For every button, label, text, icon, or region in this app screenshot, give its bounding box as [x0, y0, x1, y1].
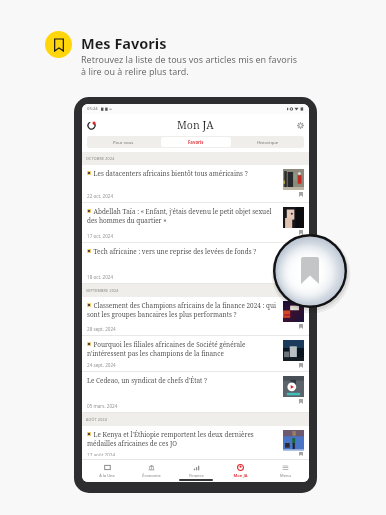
button[interactable]: Historique: [233, 137, 303, 147]
button[interactable]: Abdellah Taïa : « Enfant, j'étais devenu…: [82, 203, 309, 243]
staticText: 28 sept. 2024: [87, 326, 116, 332]
staticText: Tech africaine : vers une reprise des le…: [87, 247, 279, 256]
staticText: Retrouvez la liste de tous vos articles …: [81, 53, 298, 78]
button[interactable]: Bookmark: [298, 191, 304, 197]
button[interactable]: Bookmark: [298, 323, 304, 329]
staticText: 05:24: [87, 106, 98, 112]
button[interactable]: Le Kenya et l'Éthiopie remportent les de…: [82, 426, 309, 459]
button[interactable]: Bookmark: [298, 398, 304, 404]
staticText: Les datacenters africains bientôt tous a…: [87, 169, 279, 178]
button[interactable]: Bookmark: [298, 362, 304, 368]
staticText: SEPTEMBRE 2024: [86, 288, 119, 293]
button[interactable]: Menu: [265, 462, 305, 480]
staticText: 05 mars. 2024: [87, 403, 118, 409]
button[interactable]: Bookmark: [298, 452, 304, 456]
staticText: AOÛT 2024: [86, 417, 108, 422]
button[interactable]: Settings: [293, 118, 307, 132]
staticText: 17 oct. 2024: [87, 233, 114, 239]
staticText: 17 août 2024: [87, 452, 116, 456]
button[interactable]: Mon JA: [220, 462, 260, 480]
staticText: Pourquoi les filiales africaines de Soci…: [87, 340, 279, 358]
button[interactable]: À la Une: [87, 462, 127, 480]
button[interactable]: Notifications: [84, 118, 98, 132]
staticText: Mes Favoris: [81, 33, 167, 53]
staticText: 18 oct. 2024: [87, 274, 114, 280]
staticText: Finance: [189, 473, 204, 478]
button[interactable]: Les datacenters africains bientôt tous a…: [82, 165, 309, 203]
button[interactable]: Bookmark: [298, 229, 304, 235]
staticText: Menu: [280, 473, 291, 478]
button[interactable]: Pour vous: [88, 137, 159, 147]
staticText: Économie: [142, 473, 161, 478]
button[interactable]: Bookmark: [298, 269, 304, 275]
staticText: OCTOBRE 2024: [86, 156, 115, 161]
staticText: Classement des Champions africains de la…: [87, 301, 279, 319]
staticText: Favoris: [188, 139, 204, 145]
staticText: 24 sept. 2024: [87, 362, 116, 368]
staticText: 22 oct. 2024: [87, 193, 114, 199]
button[interactable]: Finance: [176, 462, 216, 480]
staticText: Le Kenya et l'Éthiopie remportent les de…: [87, 430, 279, 448]
staticText: Mon JA: [177, 118, 214, 132]
staticText: Historique: [257, 139, 279, 145]
staticText: Abdellah Taïa : « Enfant, j'étais devenu…: [87, 207, 279, 225]
button[interactable]: Économie: [131, 462, 171, 480]
staticText: À la Une: [99, 473, 115, 478]
button[interactable]: Classement des Champions africains de la…: [82, 297, 309, 336]
staticText: Mon JA: [233, 473, 248, 478]
button[interactable]: Pourquoi les filiales africaines de Soci…: [82, 336, 309, 372]
button[interactable]: Tech africaine : vers une reprise des le…: [82, 243, 309, 284]
button[interactable]: Le Cedeao, un syndicat de chefs d'État ?: [82, 372, 309, 413]
staticText: Pour vous: [113, 139, 134, 145]
staticText: Le Cedeao, un syndicat de chefs d'État ?: [87, 376, 279, 385]
button[interactable]: Favoris: [161, 137, 231, 147]
